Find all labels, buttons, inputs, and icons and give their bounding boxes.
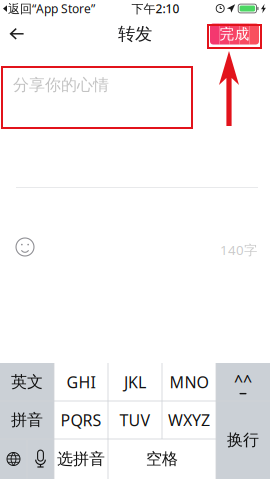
staticText: 英文: [11, 372, 43, 392]
button[interactable]: TUV: [108, 401, 162, 439]
staticText: 空格: [146, 449, 178, 469]
button[interactable]: GHI: [54, 363, 108, 401]
staticText: JKL: [124, 371, 146, 393]
button[interactable]: 颜文字: [216, 363, 270, 401]
staticText: MNO: [169, 371, 208, 393]
staticText: 140字: [220, 241, 257, 259]
button[interactable]: 表情: [10, 232, 40, 262]
staticText: 换行: [227, 430, 259, 450]
button[interactable]: 换行: [216, 401, 270, 479]
button[interactable]: JKL: [108, 363, 162, 401]
staticText: 完成: [219, 25, 249, 43]
staticText: TUV: [119, 409, 150, 431]
button[interactable]: MNO: [162, 363, 216, 401]
button[interactable]: PQRS: [54, 401, 108, 439]
staticText: 选拼音: [57, 449, 105, 469]
button[interactable]: 返回: [0, 17, 34, 51]
staticText: 分享你的心情: [13, 75, 109, 95]
staticText: ^^: [234, 370, 252, 391]
staticText: PQRS: [60, 409, 101, 431]
staticText: 转发: [118, 23, 152, 45]
button[interactable]: 切换键盘: [0, 439, 27, 479]
button[interactable]: 完成: [210, 23, 259, 44]
staticText: WXYZ: [168, 409, 210, 431]
staticText: 返回“App Store”: [8, 0, 95, 16]
button[interactable]: 拼音: [0, 401, 54, 439]
button[interactable]: 空格: [108, 439, 216, 479]
staticText: 下午2:10: [132, 0, 180, 16]
button[interactable]: 选拼音: [54, 439, 108, 479]
staticText: GHI: [66, 371, 95, 393]
button[interactable]: 英文: [0, 363, 54, 401]
staticText: 拼音: [11, 410, 43, 430]
button[interactable]: WXYZ: [162, 401, 216, 439]
button[interactable]: 语音输入: [27, 439, 54, 479]
